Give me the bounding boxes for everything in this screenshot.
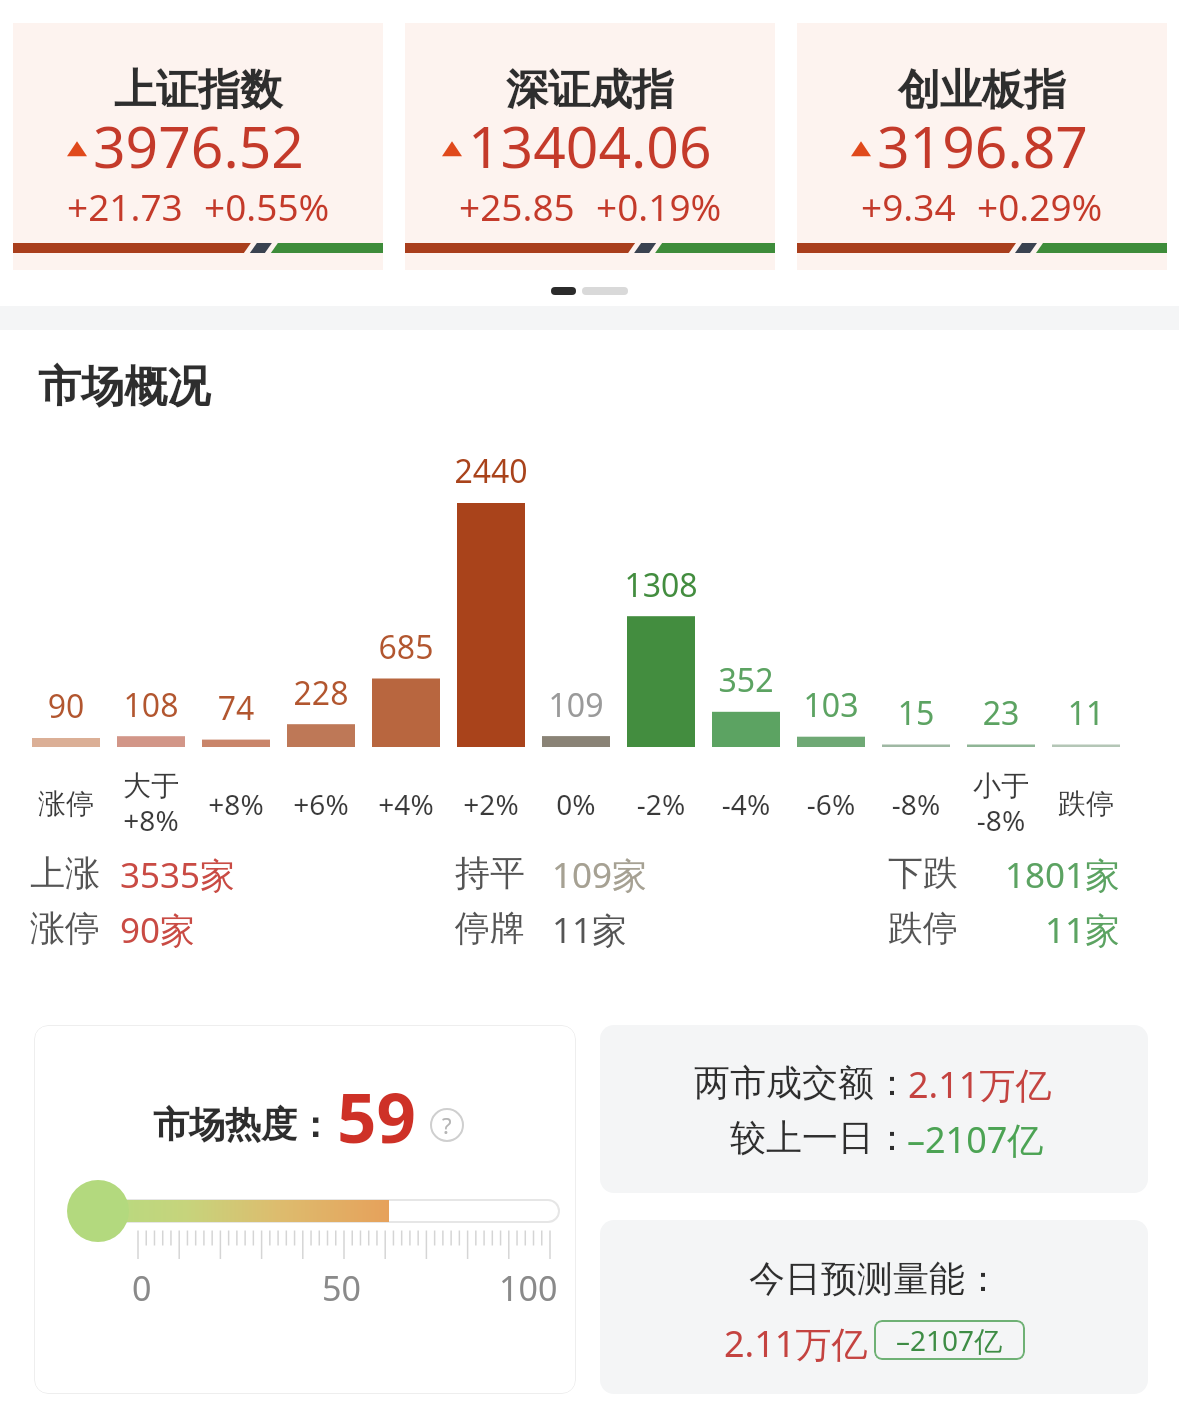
staticText: +21.73 (67, 181, 183, 231)
staticText: ? (442, 1110, 452, 1140)
staticText: 0 (132, 1265, 152, 1311)
button[interactable]: 创业板指 (797, 23, 1167, 270)
staticText: 1308 (601, 563, 721, 607)
button[interactable]: 帮助说明 (430, 1108, 464, 1142)
staticText: 11家 (552, 906, 628, 954)
button[interactable]: 两市成交额： (600, 1025, 1148, 1193)
staticText: 跌停 (888, 906, 958, 950)
staticText: 50 (322, 1265, 361, 1311)
button[interactable]: –2107亿 (874, 1320, 1025, 1360)
staticText: +6% (271, 785, 371, 823)
staticText: +25.85 (459, 181, 575, 231)
staticText: 持平 (455, 851, 525, 895)
staticText: 停牌 (455, 906, 525, 950)
staticText: 109 (516, 683, 636, 727)
staticText: +2% (441, 785, 541, 823)
staticText: 两市成交额： (620, 1060, 910, 1105)
staticText: 15 (856, 691, 976, 735)
staticText: 11家 (920, 906, 1120, 954)
staticText: -6% (781, 785, 881, 823)
staticText: 深证成指 (506, 64, 674, 117)
staticText: +0.19% (596, 181, 722, 231)
button[interactable]: 深证成指 (405, 23, 775, 270)
staticText: +0.29% (977, 181, 1103, 231)
staticText: 较上一日： (620, 1115, 910, 1160)
staticText: 100 (499, 1265, 558, 1311)
staticText: +0.55% (204, 181, 330, 231)
staticText: 3535家 (120, 851, 236, 899)
button[interactable]: 今日预测量能： (600, 1220, 1148, 1394)
button[interactable]: 上证指数 (13, 23, 383, 270)
staticText: 103 (771, 683, 891, 727)
staticText: 108 (91, 683, 211, 727)
staticText: -4% (696, 785, 796, 823)
staticText: 跌停 (1036, 786, 1136, 821)
staticText: 1801家 (920, 851, 1120, 899)
staticText: +9.34 (861, 181, 956, 231)
staticText: +4% (356, 785, 456, 823)
staticText: 小于 -8% (951, 768, 1051, 839)
staticText: 90家 (120, 906, 196, 954)
staticText: 0% (526, 785, 626, 823)
staticText: 市场概况 (38, 360, 210, 414)
staticText: 3976.52 (93, 107, 304, 185)
staticText: 涨停 (30, 906, 100, 950)
staticText: 352 (686, 658, 806, 702)
staticText: 上涨 (30, 851, 100, 895)
staticText: -2% (611, 785, 711, 823)
staticText: 3196.87 (877, 107, 1088, 185)
staticText: –2107亿 (896, 1321, 1003, 1359)
staticText: +8% (186, 785, 286, 823)
staticText: 109家 (552, 851, 648, 899)
staticText: 大于 +8% (101, 768, 201, 839)
staticText: 上证指数 (114, 64, 282, 117)
staticText: 74 (176, 686, 296, 730)
button[interactable]: 市场热度： (34, 1025, 576, 1394)
staticText: 13404.06 (468, 107, 712, 185)
staticText: 涨停 (16, 786, 116, 821)
staticText: 2.11万亿 (724, 1319, 868, 1368)
staticText: 59 (337, 1069, 416, 1163)
staticText: 11 (1026, 691, 1146, 735)
staticText: 23 (941, 691, 1061, 735)
staticText: -8% (866, 785, 966, 823)
staticText: 下跌 (888, 851, 958, 895)
staticText: 2.11万亿 (908, 1060, 1052, 1109)
staticText: 685 (346, 625, 466, 669)
staticText: 2440 (431, 449, 551, 493)
staticText: –2107亿 (907, 1115, 1044, 1164)
staticText: 市场热度： (153, 1102, 333, 1147)
staticText: 90 (6, 684, 126, 728)
staticText: 228 (261, 671, 381, 715)
staticText: 创业板指 (898, 64, 1066, 117)
staticText: 今日预测量能： (749, 1256, 1001, 1301)
